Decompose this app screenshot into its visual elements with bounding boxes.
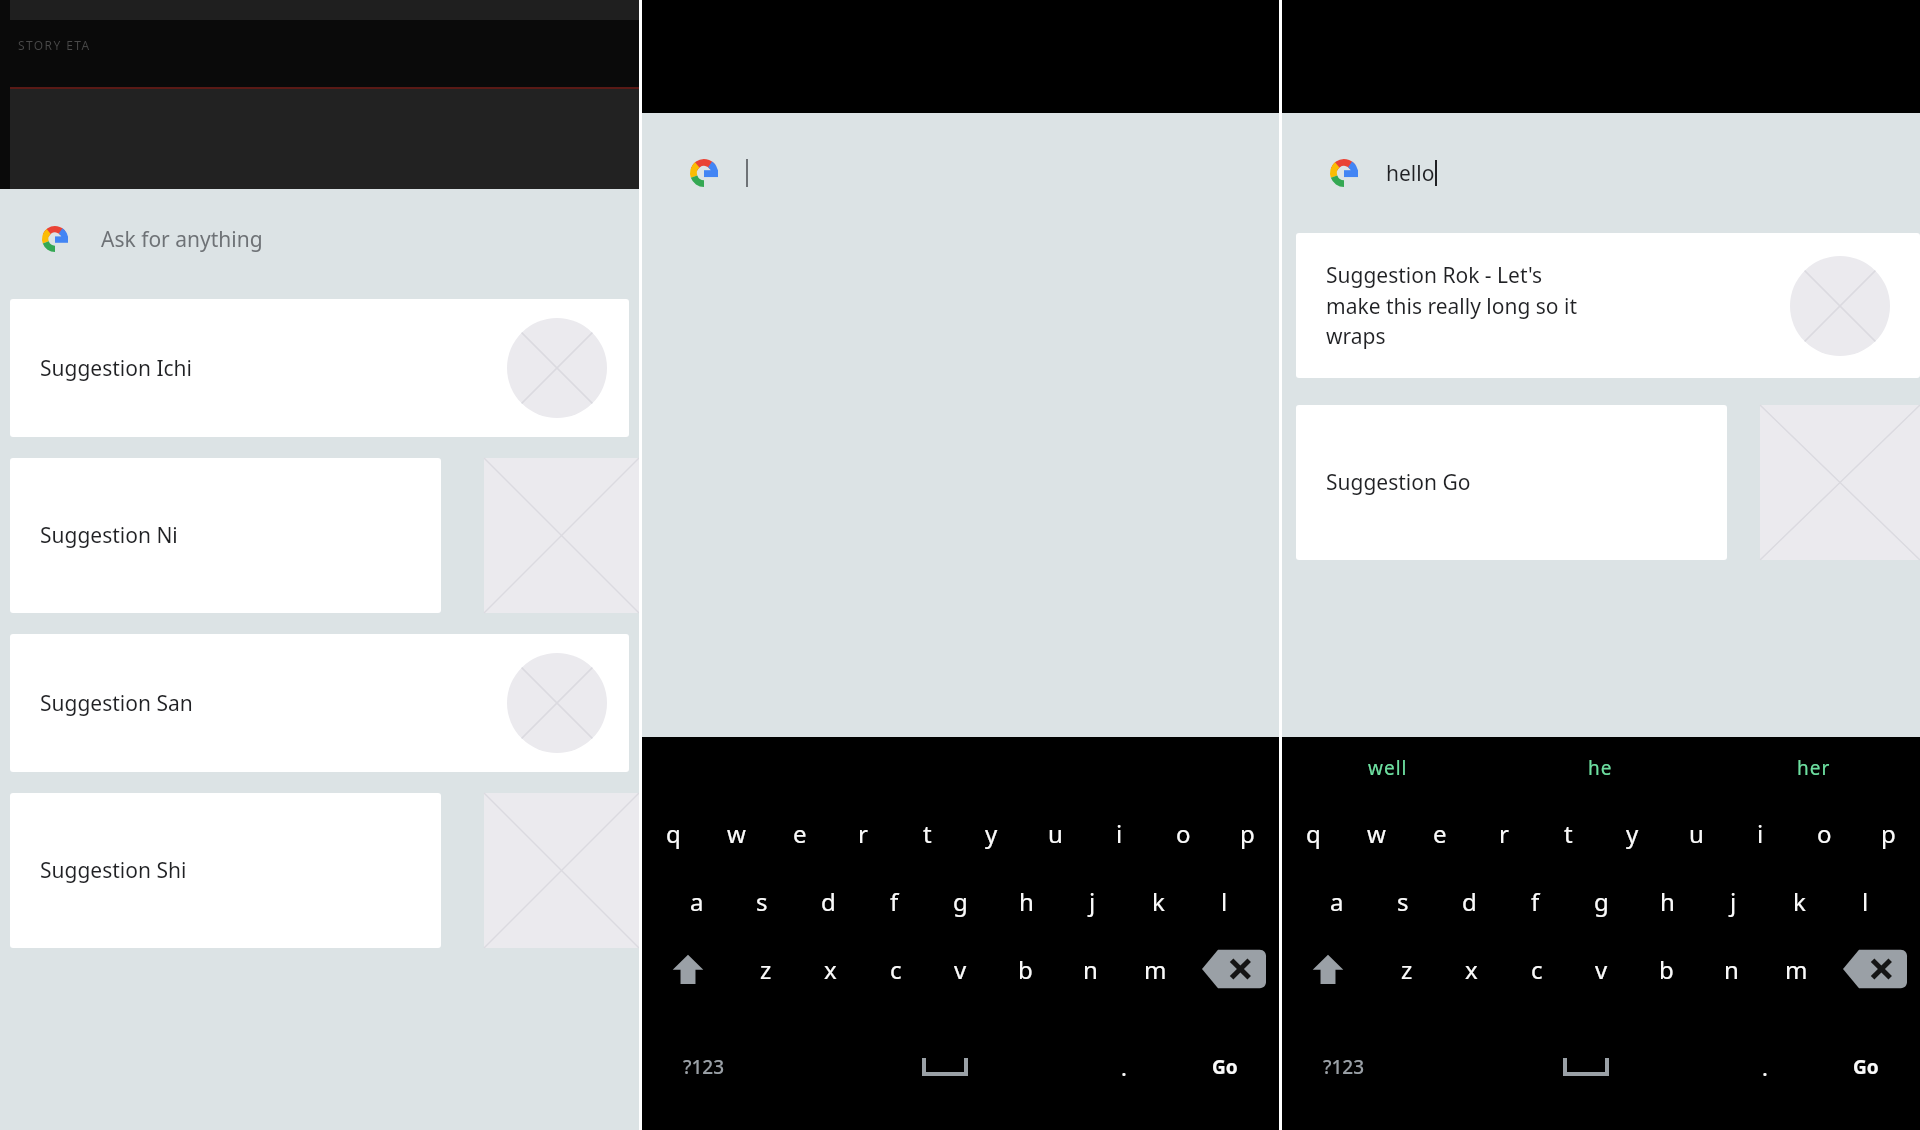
button[interactable]: a [664,867,729,935]
button[interactable]: v [928,935,993,1003]
button[interactable]: u [1023,799,1087,867]
button[interactable]: l [1191,867,1257,935]
button[interactable]: hello [1282,113,1920,233]
button[interactable]: b [1634,935,1699,1003]
button[interactable]: q [642,799,705,867]
button[interactable]: o [1792,799,1856,867]
button[interactable]: Suggestion Rok - Let's make this really … [1296,233,1920,378]
staticText: e [1433,817,1447,850]
button[interactable]: k [1766,867,1832,935]
button[interactable]: Backspace [1188,935,1279,1003]
staticText: v [954,953,967,986]
button[interactable]: e [1408,799,1472,867]
staticText: i [1757,817,1764,850]
button[interactable]: z [1374,935,1439,1003]
button[interactable]: Suggestion Shi [0,793,639,948]
staticText: m [1144,953,1167,986]
staticText: k [1793,885,1806,918]
button[interactable]: i [1728,799,1792,867]
button[interactable]: Shift [1282,935,1374,1003]
button[interactable]: Go [1811,1003,1920,1130]
staticText: e [793,817,807,850]
staticText: hello [1386,159,1435,188]
button[interactable]: f [1502,867,1568,935]
staticText: l [1862,885,1869,918]
button[interactable]: a [1304,867,1370,935]
button[interactable]: Shift [642,935,733,1003]
staticText: . [1121,1052,1127,1082]
button[interactable]: g [1568,867,1634,935]
button[interactable]: ?123 [1282,1003,1406,1130]
button[interactable]: p [1856,799,1920,867]
staticText: x [824,953,837,986]
staticText: k [1152,885,1165,918]
button[interactable] [642,113,1279,233]
button[interactable]: k [1125,867,1191,935]
staticText: Go [1853,1054,1879,1080]
button[interactable]: g [927,867,993,935]
staticText: x [1465,953,1478,986]
button[interactable]: h [993,867,1059,935]
staticText: y [985,817,998,850]
button[interactable]: j [1700,867,1766,935]
button[interactable]: ?123 [642,1003,766,1130]
button[interactable]: e [768,799,831,867]
button[interactable]: well [1282,737,1494,799]
staticText: u [1689,817,1704,850]
button[interactable]: c [863,935,928,1003]
button[interactable]: b [993,935,1058,1003]
button[interactable]: v [1569,935,1634,1003]
button[interactable]: m [1123,935,1188,1003]
button[interactable]: d [795,867,861,935]
staticText: d [1462,885,1477,918]
button[interactable]: x [798,935,863,1003]
button[interactable]: Ask for anything [0,189,639,289]
button[interactable]: Space [813,1003,1077,1130]
button[interactable]: n [1699,935,1764,1003]
button[interactable]: p [1215,799,1279,867]
button[interactable]: Suggestion Ni [0,458,639,613]
button[interactable]: . [1718,1003,1811,1130]
button[interactable]: m [1764,935,1829,1003]
button[interactable]: he [1494,737,1707,799]
button[interactable]: x [1439,935,1504,1003]
staticText: STORY ETA [18,37,91,53]
button[interactable]: q [1282,799,1345,867]
button[interactable]: u [1664,799,1728,867]
button[interactable]: t [1536,799,1600,867]
button[interactable]: y [1600,799,1664,867]
button[interactable]: n [1058,935,1123,1003]
button[interactable]: z [733,935,798,1003]
button[interactable]: Suggestion Go [1282,405,1920,560]
button[interactable]: Suggestion San [10,634,629,772]
button[interactable]: j [1059,867,1125,935]
button[interactable]: o [1151,799,1215,867]
staticText: Suggestion Ni [40,521,178,550]
button[interactable]: y [959,799,1023,867]
button[interactable]: h [1634,867,1700,935]
button[interactable]: l [1832,867,1898,935]
button[interactable]: Backspace [1829,935,1920,1003]
button[interactable]: w [705,799,768,867]
staticText: u [1048,817,1063,850]
button[interactable]: s [1370,867,1436,935]
button[interactable]: w [1345,799,1408,867]
button[interactable]: f [861,867,927,935]
button[interactable]: her [1707,737,1920,799]
button[interactable]: r [831,799,895,867]
staticText: h [1019,885,1034,918]
button[interactable]: r [1472,799,1536,867]
button[interactable]: s [729,867,795,935]
staticText: i [1116,817,1123,850]
button[interactable]: t [895,799,959,867]
button[interactable]: d [1436,867,1502,935]
button[interactable]: Space [1453,1003,1718,1130]
staticText: n [1083,953,1098,986]
button[interactable]: i [1087,799,1151,867]
button[interactable]: Go [1170,1003,1279,1130]
button[interactable]: Suggestion Ichi [10,299,629,437]
staticText: r [1499,817,1509,850]
staticText: Suggestion Rok - Let's make this really … [1326,261,1596,350]
button[interactable]: c [1504,935,1569,1003]
button[interactable]: . [1077,1003,1170,1130]
